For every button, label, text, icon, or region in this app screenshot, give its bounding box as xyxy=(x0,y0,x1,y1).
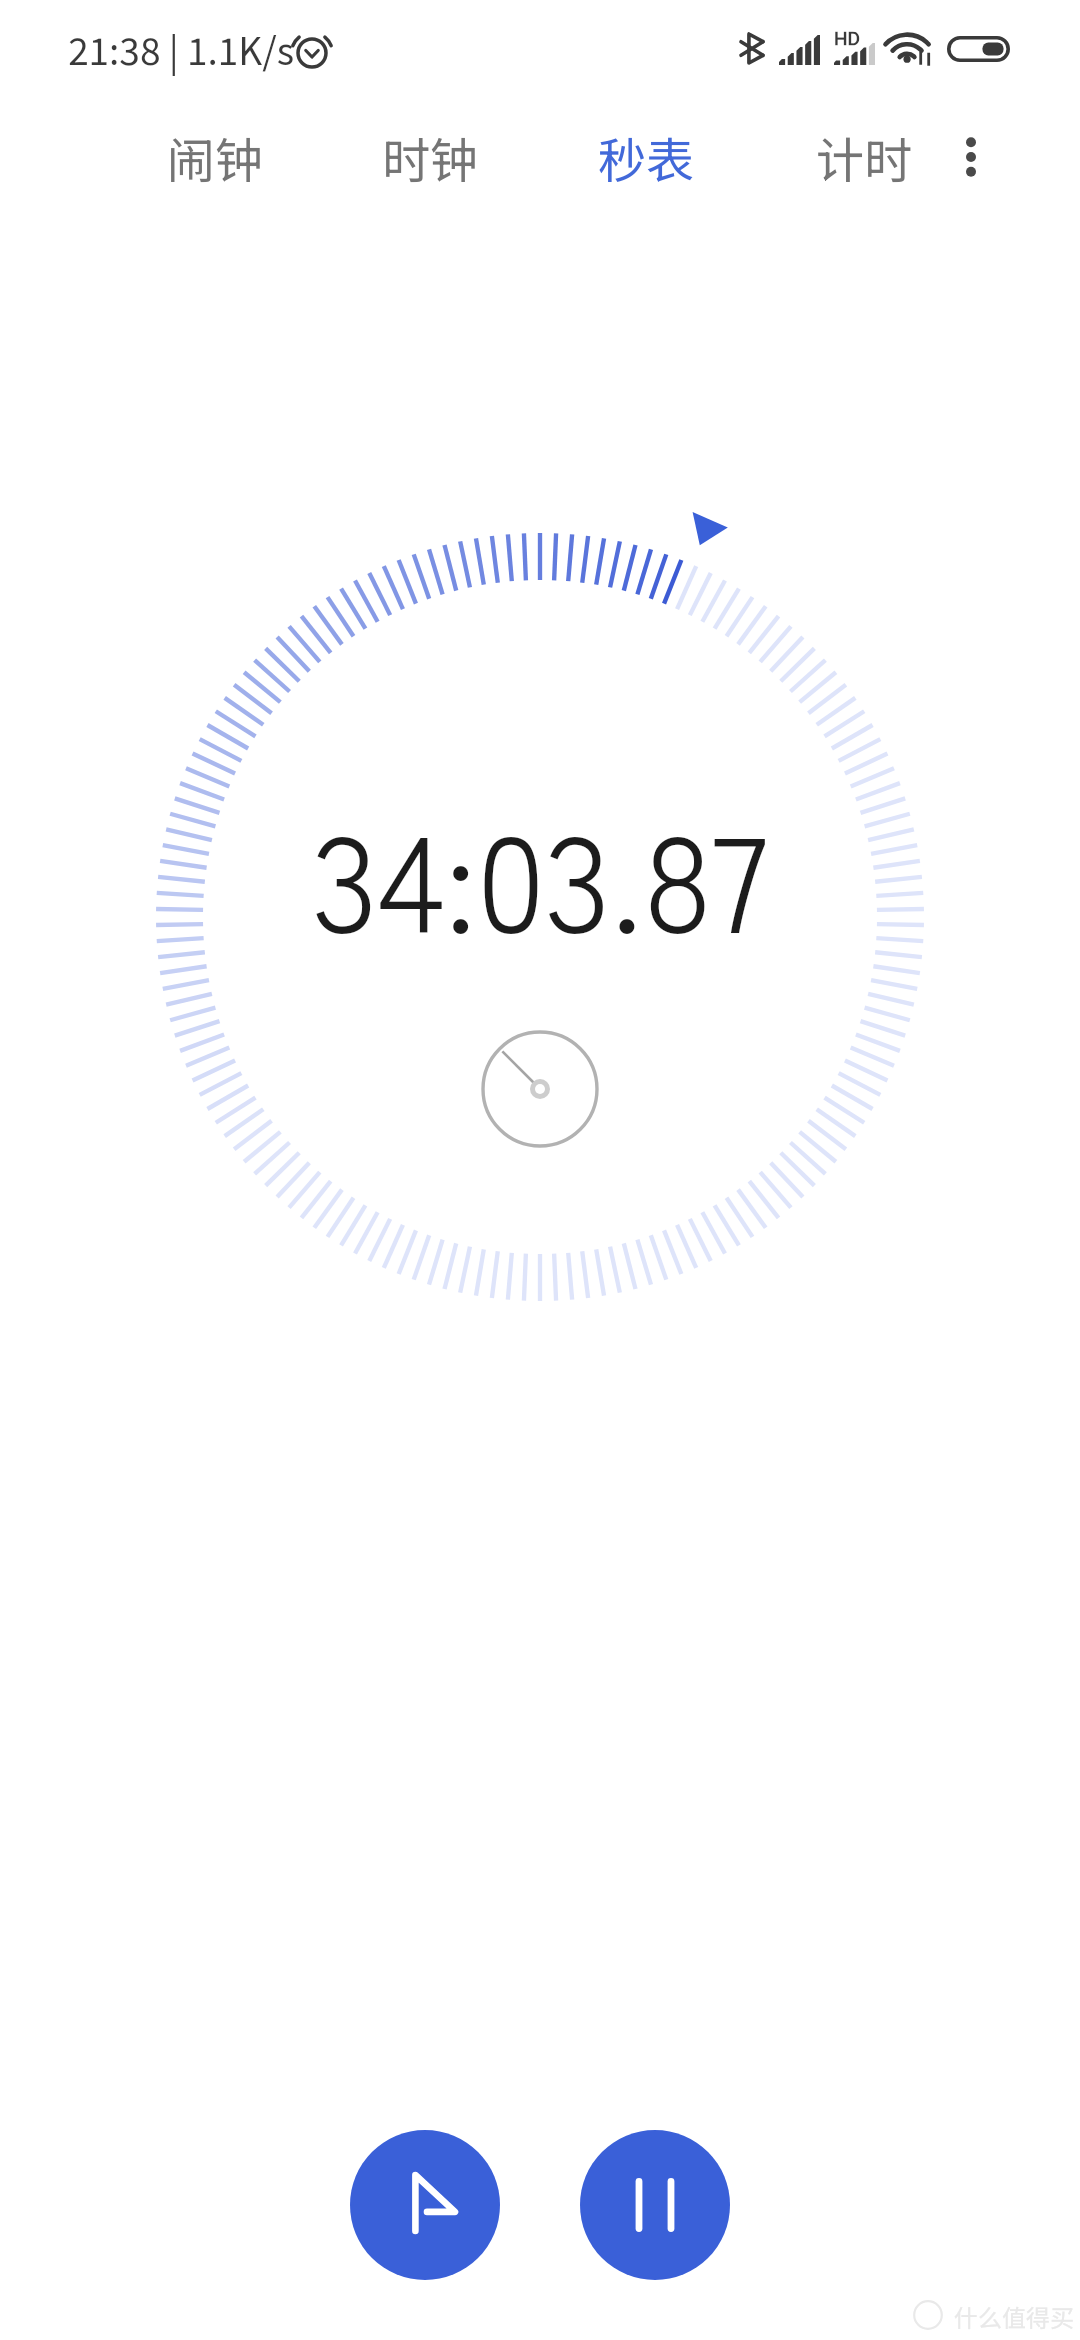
staticText: 闹钟 xyxy=(167,122,264,192)
button[interactable]: More options xyxy=(925,110,1017,204)
staticText: 什么值得买 xyxy=(954,2299,1074,2334)
staticText: 秒表 xyxy=(598,122,695,192)
button[interactable]: 计时 xyxy=(779,110,949,204)
button[interactable]: 闹钟 xyxy=(130,110,300,204)
button[interactable]: 时钟 xyxy=(345,110,515,204)
staticText: 计时 xyxy=(816,122,913,192)
staticText: 21:38 | 1.1K/s xyxy=(68,22,295,76)
button[interactable]: Pause xyxy=(580,2130,730,2280)
staticText: 时钟 xyxy=(382,122,479,192)
staticText: HD xyxy=(834,27,861,49)
button[interactable]: 秒表 xyxy=(561,110,731,204)
staticText: 34:03.87 xyxy=(0,776,1080,971)
button[interactable]: Lap xyxy=(350,2130,500,2280)
